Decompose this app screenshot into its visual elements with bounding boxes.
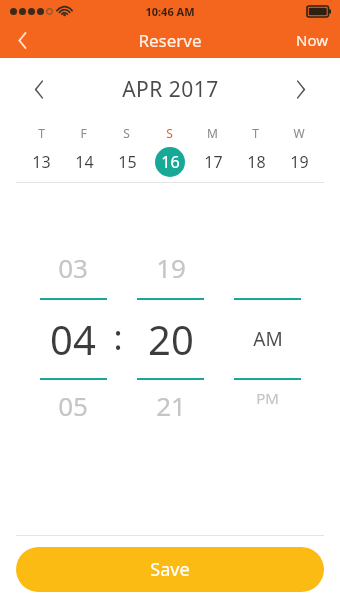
staticText: : bbox=[113, 314, 123, 360]
button[interactable]: M bbox=[191, 120, 234, 182]
staticText: 13 bbox=[32, 151, 51, 173]
button[interactable]: S bbox=[148, 120, 191, 182]
button[interactable]: 04 bbox=[24, 310, 122, 368]
button[interactable]: T bbox=[234, 120, 277, 182]
staticText: M bbox=[207, 125, 218, 141]
staticText: 04 bbox=[50, 312, 96, 366]
staticText: 21 bbox=[156, 388, 186, 423]
staticText: S bbox=[123, 125, 130, 141]
staticText: 14 bbox=[75, 151, 94, 173]
staticText: 20 bbox=[148, 312, 194, 366]
staticText: APR 2017 bbox=[122, 75, 219, 104]
button[interactable]: F bbox=[62, 120, 105, 182]
button[interactable]: Previous month bbox=[22, 72, 56, 106]
staticText: T bbox=[38, 125, 45, 141]
staticText: PM bbox=[256, 388, 279, 408]
staticText: 19 bbox=[290, 151, 309, 173]
staticText: 03 bbox=[58, 250, 88, 285]
staticText: T bbox=[252, 125, 259, 141]
button[interactable]: 20 bbox=[122, 310, 219, 368]
staticText: 10:46 AM bbox=[145, 4, 195, 19]
staticText: Now bbox=[296, 30, 328, 50]
staticText: Reserve bbox=[138, 29, 202, 52]
staticText: 19 bbox=[156, 250, 186, 285]
staticText: 05 bbox=[58, 388, 88, 423]
staticText: AM bbox=[253, 326, 283, 352]
button[interactable]: Back bbox=[0, 22, 44, 58]
button[interactable]: W bbox=[277, 120, 320, 182]
button[interactable]: AM bbox=[219, 310, 316, 368]
button[interactable]: S bbox=[105, 120, 148, 182]
button[interactable]: T bbox=[20, 120, 62, 182]
button[interactable]: Next month bbox=[284, 72, 318, 106]
staticText: 16 bbox=[161, 151, 180, 173]
staticText: 15 bbox=[118, 151, 137, 173]
staticText: Save bbox=[150, 557, 190, 582]
staticText: S bbox=[166, 125, 173, 141]
staticText: W bbox=[293, 125, 305, 141]
staticText: F bbox=[80, 125, 87, 141]
staticText: 18 bbox=[247, 151, 266, 173]
button[interactable]: Save bbox=[16, 547, 324, 592]
staticText: 17 bbox=[204, 151, 223, 173]
button[interactable]: Now bbox=[284, 22, 340, 58]
